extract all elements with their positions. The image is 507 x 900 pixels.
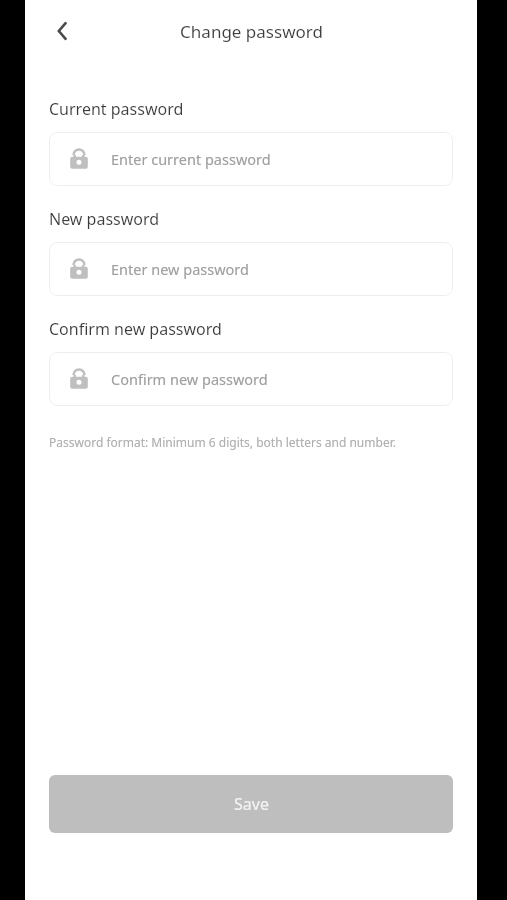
staticText: Save [234,793,269,815]
staticText: Confirm new password [49,318,222,340]
staticText: Enter new password [111,259,249,279]
button[interactable]: Confirm new password [49,352,453,406]
staticText: Password format: Minimum 6 digits, both … [49,434,453,450]
button[interactable]: Enter new password [49,242,453,296]
staticText: Enter current password [111,149,271,169]
staticText: Current password [49,98,184,120]
staticText: Confirm new password [111,369,268,389]
button[interactable]: Back [39,7,87,55]
staticText: New password [49,208,160,230]
staticText: Change password [180,20,323,43]
button[interactable]: Save [49,775,453,833]
button[interactable]: Enter current password [49,132,453,186]
